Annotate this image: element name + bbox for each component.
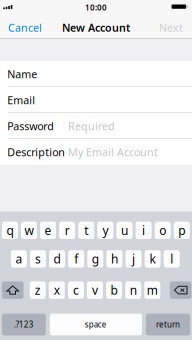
- button[interactable]: Delete: [170, 281, 191, 299]
- button[interactable]: l: [164, 250, 180, 268]
- staticText: e: [45, 222, 52, 238]
- staticText: z: [35, 282, 41, 298]
- button[interactable]: d: [49, 250, 65, 268]
- staticText: h: [111, 251, 118, 267]
- button[interactable]: t: [78, 222, 94, 239]
- staticText: Email: [7, 93, 35, 107]
- button[interactable]: Name: [0, 61, 192, 87]
- button[interactable]: Next: [147, 16, 192, 38]
- staticText: v: [92, 282, 98, 298]
- staticText: i: [142, 222, 145, 238]
- button[interactable]: g: [87, 250, 103, 268]
- button[interactable]: .?123: [2, 314, 46, 335]
- staticText: o: [159, 222, 166, 238]
- button[interactable]: s: [30, 250, 46, 268]
- staticText: r: [65, 222, 70, 238]
- button[interactable]: Shift: [2, 281, 23, 299]
- staticText: s: [35, 251, 41, 267]
- button[interactable]: k: [145, 250, 161, 268]
- button[interactable]: w: [21, 222, 37, 239]
- staticText: a: [15, 251, 22, 267]
- staticText: x: [54, 282, 60, 298]
- button[interactable]: r: [59, 222, 75, 239]
- staticText: f: [74, 251, 78, 267]
- button[interactable]: c: [68, 281, 84, 299]
- staticText: y: [102, 222, 108, 238]
- button[interactable]: Email: [0, 87, 192, 113]
- staticText: Required: [68, 119, 115, 133]
- button[interactable]: o: [155, 222, 171, 239]
- staticText: 10:00: [85, 2, 107, 13]
- staticText: j: [132, 251, 135, 267]
- button[interactable]: x: [49, 281, 65, 299]
- button[interactable]: i: [136, 222, 152, 239]
- button[interactable]: Cancel: [0, 16, 48, 38]
- button[interactable]: h: [106, 250, 122, 268]
- staticText: l: [170, 251, 173, 267]
- button[interactable]: z: [30, 281, 46, 299]
- staticText: My Email Account: [68, 145, 158, 159]
- staticText: Description: [7, 145, 65, 159]
- staticText: p: [178, 222, 185, 238]
- staticText: return: [156, 319, 180, 330]
- button[interactable]: f: [68, 250, 84, 268]
- button[interactable]: u: [116, 222, 132, 239]
- button[interactable]: m: [144, 281, 160, 299]
- staticText: Cancel: [8, 20, 42, 35]
- staticText: c: [73, 282, 79, 298]
- staticText: k: [150, 251, 156, 267]
- staticText: w: [24, 222, 33, 238]
- button[interactable]: v: [87, 281, 103, 299]
- button[interactable]: y: [97, 222, 113, 239]
- button[interactable]: return: [146, 314, 190, 335]
- staticText: Name: [7, 67, 37, 81]
- staticText: q: [6, 222, 13, 238]
- button[interactable]: Password: [0, 113, 192, 139]
- staticText: g: [92, 251, 99, 267]
- staticText: m: [147, 282, 158, 298]
- staticText: d: [54, 251, 61, 267]
- button[interactable]: a: [11, 250, 27, 268]
- staticText: t: [84, 222, 88, 238]
- staticText: b: [111, 282, 118, 298]
- staticText: Password: [7, 119, 54, 133]
- button[interactable]: e: [40, 222, 56, 239]
- staticText: New Account: [62, 20, 130, 35]
- button[interactable]: q: [2, 222, 18, 239]
- staticText: Next: [159, 20, 183, 35]
- button[interactable]: b: [106, 281, 122, 299]
- button[interactable]: Description: [0, 139, 192, 165]
- button[interactable]: n: [125, 281, 141, 299]
- staticText: u: [121, 222, 128, 238]
- button[interactable]: j: [125, 250, 141, 268]
- staticText: .?123: [14, 319, 34, 330]
- staticText: space: [85, 319, 107, 330]
- button[interactable]: p: [174, 222, 190, 239]
- button[interactable]: space: [50, 314, 142, 335]
- staticText: n: [130, 282, 137, 298]
